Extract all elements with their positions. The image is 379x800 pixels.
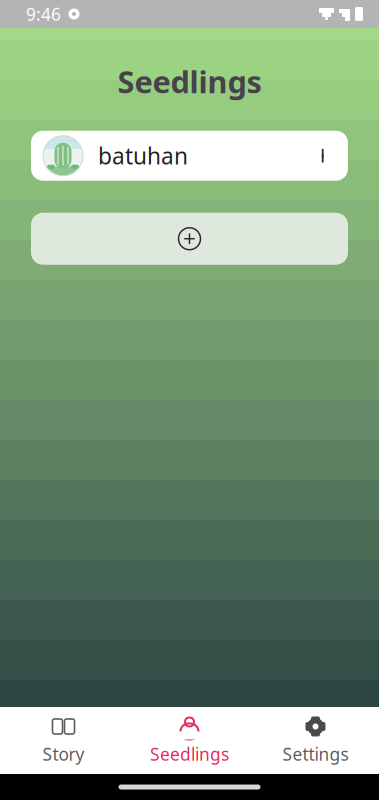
staticText: Story (42, 742, 84, 765)
button[interactable]: Settings (252, 707, 378, 774)
staticText: Seedlings (150, 742, 229, 765)
staticText: Settings (282, 742, 348, 765)
staticText: Seedlings (117, 61, 261, 102)
button[interactable]: batuhan (31, 131, 348, 181)
button[interactable]: Seedlings (126, 707, 252, 774)
button[interactable]: Add seedling (31, 213, 348, 265)
staticText: batuhan (98, 141, 188, 171)
staticText: 9:46 (26, 2, 61, 25)
button[interactable]: Story (0, 707, 126, 774)
